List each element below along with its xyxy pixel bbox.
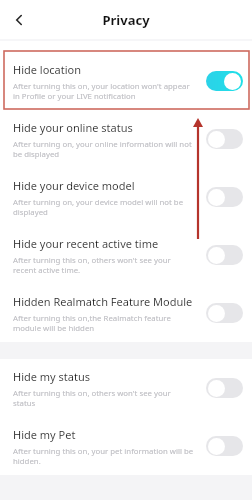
button[interactable]: Toggle off bbox=[206, 129, 243, 149]
staticText: Privacy bbox=[102, 11, 150, 29]
staticText: Hide your device model bbox=[13, 178, 135, 193]
button[interactable]: Hide your recent active time bbox=[0, 226, 252, 284]
staticText: After turning on, your online informatio… bbox=[13, 139, 192, 159]
button[interactable]: Hide your online status bbox=[0, 110, 252, 168]
staticText: After turning this on, others won't see … bbox=[13, 388, 171, 408]
staticText: After turning on, your device model will… bbox=[13, 197, 184, 217]
staticText: Hide my Pet bbox=[13, 427, 76, 442]
button[interactable]: Hidden Realmatch Feature Module bbox=[0, 284, 252, 342]
staticText: After turning this on, your pet informat… bbox=[13, 446, 194, 466]
button[interactable]: Toggle on bbox=[206, 71, 243, 91]
button[interactable]: Hide my Pet bbox=[0, 417, 252, 475]
button[interactable]: Hide location bbox=[0, 52, 252, 110]
button[interactable]: Toggle off bbox=[206, 187, 243, 207]
staticText: Hide your online status bbox=[13, 120, 133, 135]
button[interactable]: Hide my status bbox=[0, 359, 252, 417]
button[interactable]: Toggle off bbox=[206, 245, 243, 265]
staticText: After turning this on, others won't see … bbox=[13, 255, 171, 275]
staticText: Hide your recent active time bbox=[13, 236, 159, 251]
button[interactable]: Toggle off bbox=[206, 303, 243, 323]
staticText: Hide location bbox=[13, 62, 82, 77]
staticText: Hidden Realmatch Feature Module bbox=[13, 294, 193, 309]
button[interactable]: Toggle off bbox=[206, 436, 243, 456]
staticText: After turning this on, your location won… bbox=[13, 81, 190, 101]
button[interactable]: Hide your device model bbox=[0, 168, 252, 226]
staticText: Hide my status bbox=[13, 369, 91, 384]
button[interactable]: Back bbox=[6, 7, 32, 33]
button[interactable]: Toggle off bbox=[206, 378, 243, 398]
staticText: After turning this on,the Realmatch feat… bbox=[13, 313, 171, 333]
